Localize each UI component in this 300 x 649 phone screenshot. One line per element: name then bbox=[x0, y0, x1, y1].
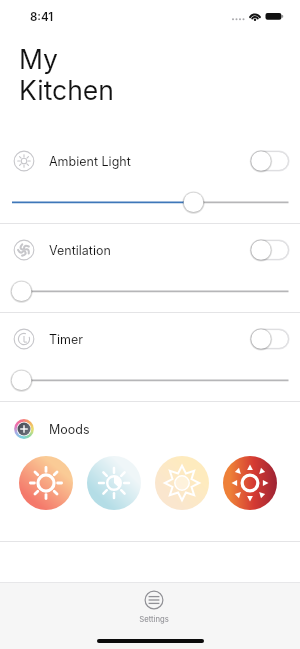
button[interactable]: Settings bbox=[119, 589, 189, 624]
staticText: My Kitchen bbox=[19, 43, 114, 106]
button[interactable] bbox=[0, 365, 300, 394]
staticText: Settings bbox=[139, 615, 169, 624]
button[interactable] bbox=[0, 187, 300, 216]
staticText: Timer bbox=[49, 332, 84, 347]
button[interactable]: Warm mood bbox=[19, 456, 73, 510]
button[interactable]: Ventilation bbox=[0, 224, 300, 276]
staticText: Moods bbox=[49, 422, 90, 437]
staticText: Ambient Light bbox=[49, 154, 131, 169]
button[interactable]: Toggle bbox=[251, 329, 289, 349]
button[interactable]: Bright mood bbox=[223, 456, 277, 510]
button[interactable]: Star mood bbox=[155, 456, 209, 510]
button[interactable]: Cool mood bbox=[87, 456, 141, 510]
staticText: 8:41 bbox=[30, 10, 54, 24]
staticText: Ventilation bbox=[49, 243, 111, 258]
button[interactable]: Timer bbox=[0, 313, 300, 365]
button[interactable]: Moods bbox=[0, 402, 300, 456]
button[interactable]: Ambient Light bbox=[0, 135, 300, 187]
button[interactable]: Toggle bbox=[251, 151, 289, 171]
button[interactable]: Toggle bbox=[251, 240, 289, 260]
button[interactable] bbox=[0, 276, 300, 305]
